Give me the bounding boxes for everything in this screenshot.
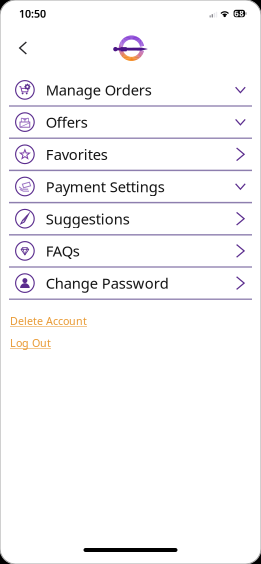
staticText: Suggestions (46, 209, 130, 228)
button[interactable]: Manage Orders (0, 74, 261, 107)
staticText: Delete Account (10, 314, 87, 328)
staticText: Favorites (46, 145, 108, 164)
staticText: Change Password (46, 273, 169, 293)
button[interactable]: Delete Account (10, 310, 87, 332)
button[interactable]: Change Password (0, 268, 261, 300)
staticText: Log Out (10, 336, 51, 350)
button[interactable]: FAQs (0, 235, 261, 268)
button[interactable]: Log Out (10, 332, 51, 354)
staticText: Offers (46, 112, 88, 132)
staticText: 10:50 (19, 6, 46, 21)
staticText: FAQs (46, 241, 80, 261)
button[interactable]: Payment Settings (0, 171, 261, 203)
button[interactable]: Favorites (0, 139, 261, 171)
button[interactable]: Back (0, 33, 46, 63)
button[interactable]: Suggestions (0, 203, 261, 235)
button[interactable]: Offers (0, 107, 261, 139)
staticText: 68 (234, 8, 244, 19)
staticText: Manage Orders (46, 80, 152, 100)
staticText: Payment Settings (46, 177, 165, 196)
